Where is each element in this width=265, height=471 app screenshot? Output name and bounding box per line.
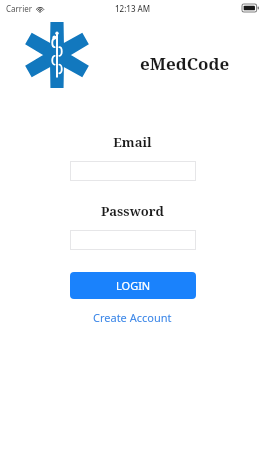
other: eMedCode logo	[24, 22, 90, 88]
button[interactable]	[70, 230, 196, 250]
button[interactable]: Create Account	[85, 308, 180, 327]
staticText: Password	[101, 202, 164, 220]
staticText: Email	[113, 133, 152, 151]
staticText: Carrier	[6, 3, 33, 14]
button[interactable]	[70, 161, 196, 181]
staticText: LOGIN	[116, 278, 151, 293]
staticText: Create Account	[93, 310, 172, 325]
staticText: 12:13 AM	[115, 3, 151, 14]
button[interactable]: LOGIN	[70, 272, 196, 299]
staticText: eMedCode	[140, 52, 230, 75]
